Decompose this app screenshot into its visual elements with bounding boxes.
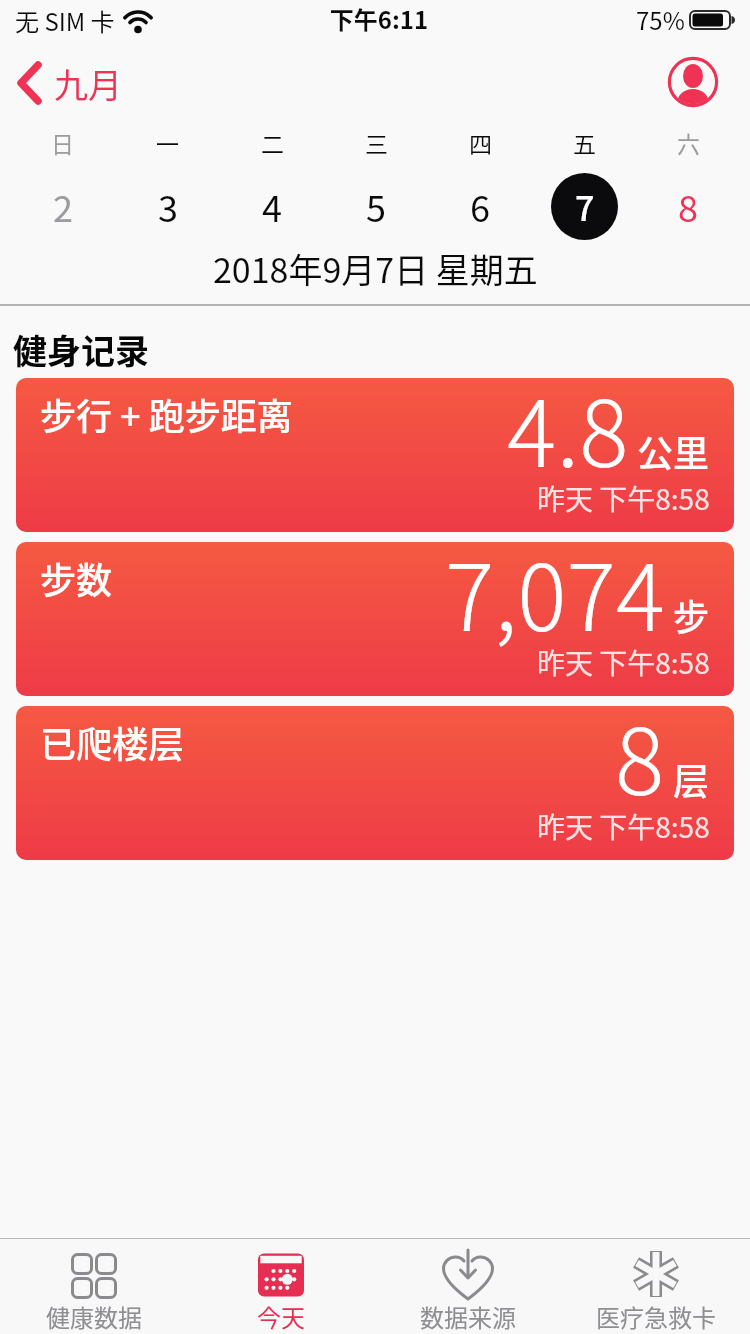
button[interactable]: 今天 (187, 1238, 374, 1334)
staticText: 四 (469, 126, 492, 158)
staticText: 无 SIM 卡 (15, 3, 115, 38)
staticText: 昨天 下午8:58 (537, 478, 710, 519)
staticText: 昨天 下午8:58 (537, 642, 710, 683)
staticText: 医疗急救卡 (596, 1299, 716, 1334)
button[interactable]: 健康数据 (0, 1238, 187, 1334)
staticText: 健康数据 (46, 1299, 142, 1334)
button[interactable]: 4 (220, 170, 324, 242)
staticText: 六 (677, 126, 700, 158)
staticText: 二 (261, 126, 284, 158)
button[interactable]: 已爬楼层 (16, 706, 734, 860)
staticText: 已爬楼层 (40, 716, 185, 768)
button[interactable]: 数据来源 (374, 1238, 562, 1334)
staticText: 一 (156, 126, 179, 158)
button[interactable]: 8 (636, 170, 740, 242)
staticText: 步 (673, 589, 710, 641)
staticText: 4 (262, 180, 282, 232)
staticText: 日 (51, 126, 74, 158)
staticText: 2018年9月7日 星期五 (213, 244, 538, 292)
staticText: 3 (158, 180, 178, 232)
button[interactable]: 7 (532, 170, 636, 242)
staticText: 7 (575, 182, 595, 231)
button[interactable]: 2 (10, 170, 115, 242)
staticText: 步行 + 跑步距离 (40, 388, 293, 440)
staticText: 公里 (637, 425, 710, 477)
staticText: 九月 (54, 59, 122, 108)
staticText: 今天 (257, 1299, 305, 1334)
staticText: 8 (615, 706, 665, 821)
staticText: 步数 (40, 552, 113, 604)
staticText: 健身记录 (13, 325, 149, 374)
button[interactable]: 步行 + 跑步距离 (16, 378, 734, 532)
staticText: 昨天 下午8:58 (537, 806, 710, 847)
staticText: 7,074 (445, 542, 665, 657)
staticText: 8 (678, 180, 698, 232)
staticText: 2 (53, 180, 73, 232)
button[interactable]: 步数 (16, 542, 734, 696)
button[interactable] (667, 55, 721, 109)
button[interactable]: 九月 (0, 42, 150, 120)
staticText: 下午6:11 (4, 1, 750, 36)
button[interactable]: 医疗急救卡 (562, 1238, 750, 1334)
staticText: 5 (366, 180, 386, 232)
staticText: 三 (365, 126, 388, 158)
button[interactable]: 6 (428, 170, 532, 242)
button[interactable]: 3 (115, 170, 220, 242)
staticText: 4.8 (507, 378, 629, 493)
staticText: 数据来源 (420, 1299, 516, 1334)
button[interactable]: 5 (324, 170, 428, 242)
staticText: 五 (573, 126, 596, 158)
staticText: 6 (470, 180, 490, 232)
staticText: 75% (636, 2, 685, 37)
staticText: 层 (673, 753, 710, 805)
